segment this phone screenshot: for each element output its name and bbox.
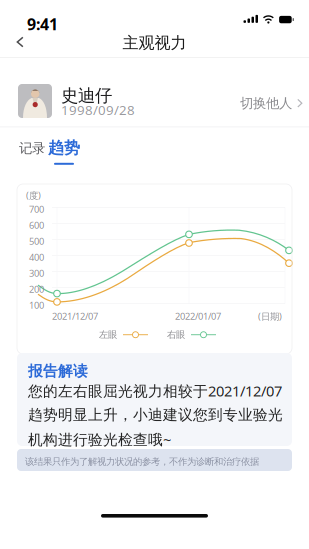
- staticText: 左眼: [99, 329, 117, 340]
- staticText: 1998/09/28: [61, 101, 135, 119]
- staticText: 2022/01/07: [175, 310, 221, 322]
- staticText: 史迪仔: [61, 85, 112, 106]
- staticText: 9:41: [27, 13, 58, 35]
- button[interactable]: 切换他人: [240, 89, 303, 117]
- staticText: 400: [29, 251, 44, 263]
- staticText: 趋势: [48, 138, 80, 158]
- staticText: 100: [29, 299, 44, 311]
- button[interactable]: 返回: [8, 30, 32, 54]
- staticText: 机构进行验光检查哦~: [28, 429, 171, 449]
- button[interactable]: 记录: [13, 134, 51, 169]
- staticText: (日期): [258, 310, 282, 322]
- staticText: 趋势明显上升，小迪建议您到专业验光: [28, 406, 283, 424]
- staticText: 您的左右眼屈光视力相较于2021/12/07: [28, 381, 282, 400]
- staticText: 右眼: [167, 329, 185, 340]
- staticText: 记录: [19, 140, 45, 157]
- staticText: 报告解读: [28, 362, 88, 380]
- staticText: 该结果只作为了解视力状况的参考，不作为诊断和治疗依据: [25, 456, 259, 467]
- staticText: 600: [29, 219, 44, 231]
- staticText: 300: [29, 267, 44, 279]
- staticText: (度): [26, 189, 41, 201]
- staticText: 2021/12/07: [52, 310, 98, 322]
- staticText: 500: [29, 235, 44, 247]
- button[interactable]: 趋势: [42, 134, 86, 170]
- staticText: 700: [29, 203, 44, 215]
- staticText: 切换他人: [240, 95, 292, 111]
- staticText: 200: [29, 283, 44, 295]
- staticText: 主观视力: [122, 33, 186, 53]
